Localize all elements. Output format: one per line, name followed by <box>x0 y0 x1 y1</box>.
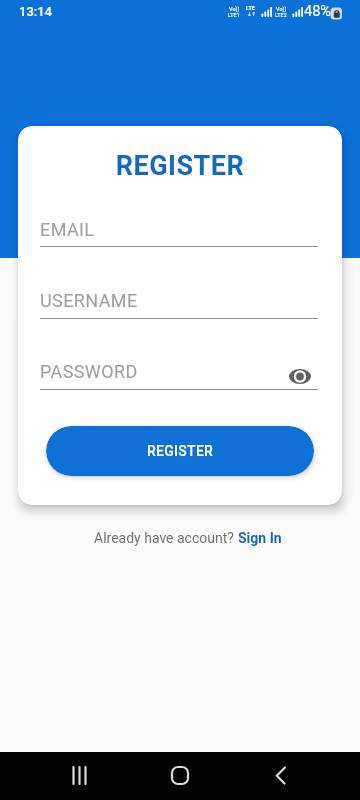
staticText: LTE2 <box>275 12 287 18</box>
staticText: Already have account? <box>94 530 238 546</box>
staticText: Vo)) <box>276 6 287 12</box>
staticText: LTE1 <box>228 12 240 18</box>
staticText: EMAIL <box>40 219 95 240</box>
button[interactable]: Already have account? <box>8 530 360 546</box>
button[interactable] <box>167 763 193 789</box>
staticText: LTE <box>246 5 255 11</box>
button[interactable]: REGISTER <box>46 426 314 476</box>
staticText: 48% <box>304 3 331 20</box>
staticText: REGISTER <box>18 150 342 182</box>
staticText: Sign In <box>238 530 282 546</box>
staticText: PASSWORD <box>40 361 138 382</box>
button[interactable] <box>268 763 294 789</box>
staticText: ↓↑ <box>247 11 257 17</box>
staticText: Vo)) <box>229 6 240 12</box>
staticText: USERNAME <box>40 290 138 311</box>
button[interactable] <box>66 763 92 789</box>
button[interactable] <box>289 369 311 384</box>
staticText: REGISTER <box>147 443 214 459</box>
staticText: 13:14 <box>19 4 53 19</box>
